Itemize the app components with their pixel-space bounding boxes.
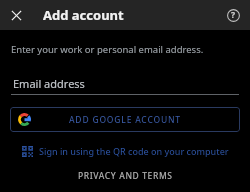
staticText: ?	[231, 9, 236, 21]
button[interactable]: Sign in using the QR code on your comput…	[0, 145, 250, 157]
button[interactable]: Help	[222, 4, 244, 26]
staticText: ADD GOOGLE ACCOUNT	[69, 114, 181, 126]
button[interactable]: Email address	[11, 72, 239, 94]
staticText: Sign in using the QR code on your comput…	[39, 145, 229, 157]
staticText: PRIVACY AND TERMS	[78, 170, 173, 182]
button[interactable]: Close	[5, 4, 27, 26]
staticText: Enter your work or personal email addres…	[11, 43, 204, 56]
staticText: Email address	[13, 76, 85, 91]
button[interactable]: ADD GOOGLE ACCOUNT	[10, 107, 240, 132]
staticText: Add account	[43, 6, 124, 24]
button[interactable]: PRIVACY AND TERMS	[0, 170, 250, 182]
